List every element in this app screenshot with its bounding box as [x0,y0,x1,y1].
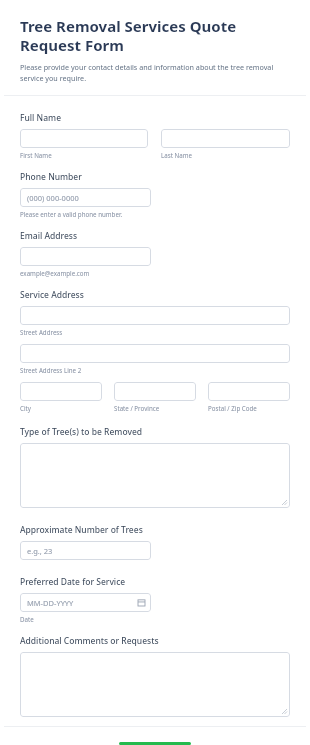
button[interactable]: Submit [119,742,191,745]
staticText: City [20,404,31,412]
staticText: Type of Tree(s) to be Removed [20,426,143,438]
staticText: Full Name [20,112,62,124]
staticText: example@example.com [20,269,90,277]
staticText: First Name [20,151,52,159]
button[interactable]: Type of Tree(s) to be Removed [20,443,290,508]
staticText: Additional Comments or Requests [20,635,159,647]
staticText: Street Address [20,328,63,336]
staticText: Preferred Date for Service [20,576,126,588]
button[interactable]: Street Address [20,306,290,325]
staticText: Please enter a valid phone number. [20,210,123,218]
staticText: State / Province [114,404,160,412]
staticText: (000) 000-0000 [27,193,79,203]
staticText: Last Name [161,151,192,159]
button[interactable]: City [20,382,102,401]
staticText: e.g., 23 [27,546,53,556]
staticText: Phone Number [20,171,82,183]
staticText: Postal / Zip Code [208,404,257,412]
button[interactable]: Preferred Date for Service [20,593,151,612]
button[interactable]: Phone Number [20,188,151,207]
button[interactable]: Postal / Zip Code [208,382,290,401]
button[interactable]: Email Address [20,247,151,266]
staticText: MM-DD-YYYY [27,598,74,608]
button[interactable]: Approximate Number of Trees [20,541,151,560]
button[interactable]: Street Address Line 2 [20,344,290,363]
button[interactable]: State / Province [114,382,196,401]
button[interactable]: Additional Comments or Requests [20,652,290,717]
button[interactable]: Last Name [161,129,290,148]
staticText: Street Address Line 2 [20,366,82,374]
staticText: Date [20,615,34,623]
staticText: Approximate Number of Trees [20,524,143,536]
staticText: Tree Removal Services Quote Request Form [20,16,290,55]
staticText: Please provide your contact details and … [20,62,290,83]
staticText: Service Address [20,289,84,301]
button[interactable]: First Name [20,129,148,148]
staticText: Email Address [20,230,78,242]
